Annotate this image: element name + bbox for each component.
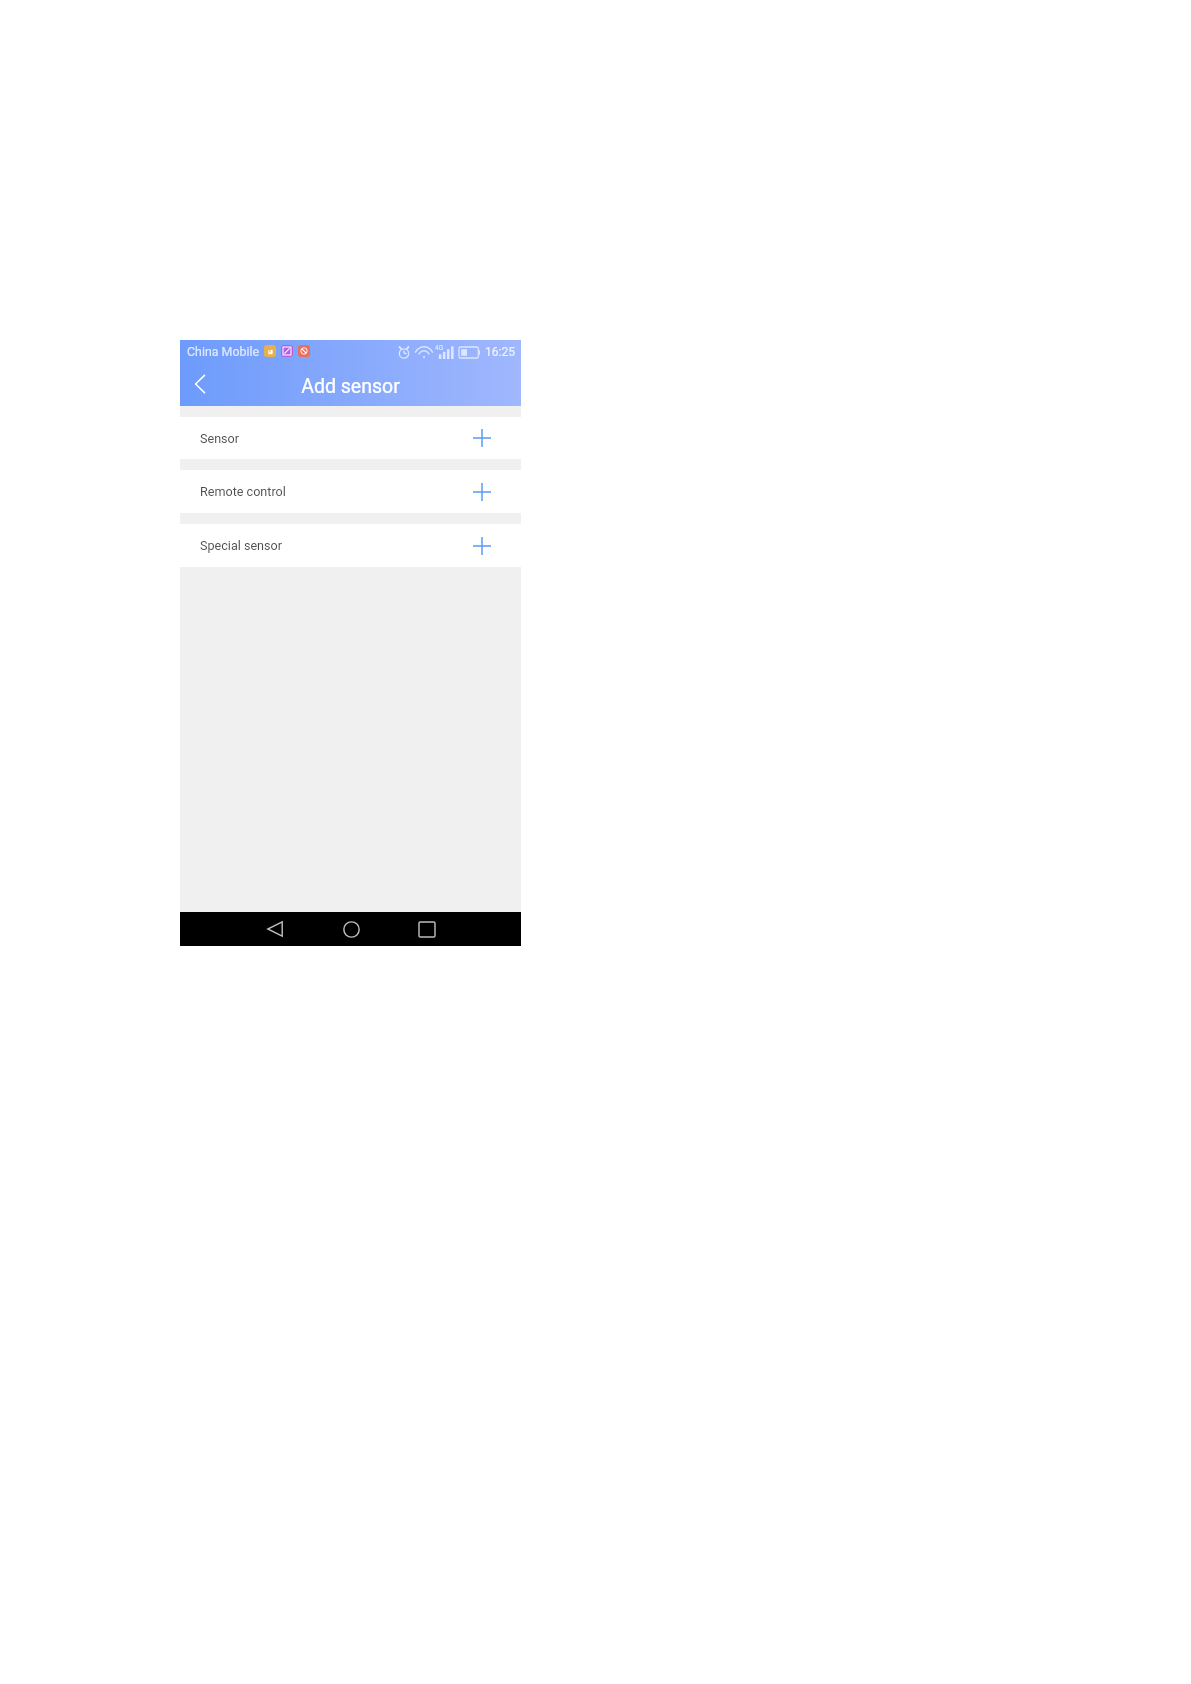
staticText: Sensor [200, 431, 240, 446]
staticText: Add sensor [301, 375, 400, 398]
staticText: Remote control [200, 484, 286, 499]
button[interactable]: Add Remote control [468, 478, 496, 506]
button[interactable]: Add Sensor [468, 424, 496, 452]
button[interactable]: Special sensor [180, 524, 521, 567]
button[interactable]: Home [334, 912, 368, 946]
button[interactable]: Recent apps [410, 912, 444, 946]
button[interactable]: Remote control [180, 470, 521, 513]
button[interactable]: Sensor [180, 417, 521, 459]
button[interactable]: Back [184, 368, 216, 400]
staticText: Special sensor [200, 538, 283, 553]
button[interactable]: Back [258, 912, 292, 946]
staticText: 16:25 [485, 345, 515, 359]
staticText: 4G [435, 344, 444, 352]
staticText: China Mobile [187, 344, 259, 359]
button[interactable]: Add Special sensor [468, 532, 496, 560]
